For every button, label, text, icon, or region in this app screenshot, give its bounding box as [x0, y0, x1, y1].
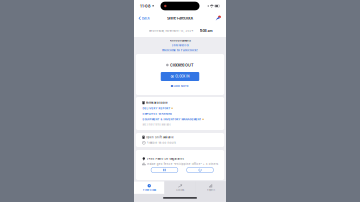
button[interactable]: Back [136, 13, 152, 23]
staticText: Actions [176, 189, 184, 191]
staticText: 5486 Paseo De Magallanes [146, 157, 183, 160]
staticText: 11:08 [140, 4, 151, 8]
button[interactable]: Time Clock [134, 181, 164, 194]
staticText: CLOCK IN [175, 75, 189, 78]
button[interactable]: Actions [165, 181, 195, 194]
staticText: DELIVERY REPORT [142, 107, 170, 110]
button[interactable]: Reports [195, 181, 226, 194]
staticText: Inside geo fence "Philippine Office" + 3… [147, 162, 218, 166]
button[interactable]: EQUIPMENT & INVENTORY MANAGEMENT [142, 118, 204, 121]
button[interactable]: DELIVERY REPORT [142, 107, 173, 110]
staticText: Shine Fareclock [167, 16, 193, 20]
button[interactable]: Refresh location [186, 167, 213, 173]
staticText: Announcements [169, 39, 190, 42]
staticText: EMPLOYEE WARNING [142, 112, 172, 115]
staticText: and 3 more forms available [142, 123, 170, 126]
staticText: EQUIPMENT & INVENTORY MANAGEMENT [142, 118, 201, 121]
staticText: ADD NOTE [174, 84, 189, 88]
staticText: Back [142, 16, 150, 20]
button[interactable]: Pinned announcement [213, 13, 223, 23]
staticText: Shine Fareclock [171, 44, 188, 47]
button[interactable]: ADD NOTE [171, 81, 189, 91]
staticText: Flexible 18:00 hours [147, 141, 176, 144]
staticText: Time Clock [143, 189, 156, 191]
button[interactable]: CLOCK IN [161, 72, 199, 81]
button[interactable]: Pause location tracking [151, 167, 178, 173]
staticText: Clocked OUT [170, 63, 194, 67]
staticText: Welcome to Fareclock! [162, 49, 198, 52]
button[interactable]: EMPLOYEE WARNING [142, 112, 172, 115]
staticText: Open Shift available [146, 136, 174, 139]
staticText: Wednesday, November 13, 2024 [148, 29, 193, 32]
staticText: Reports [207, 188, 215, 191]
staticText: 11:08 am [199, 29, 212, 33]
staticText: Forms available [146, 101, 168, 104]
